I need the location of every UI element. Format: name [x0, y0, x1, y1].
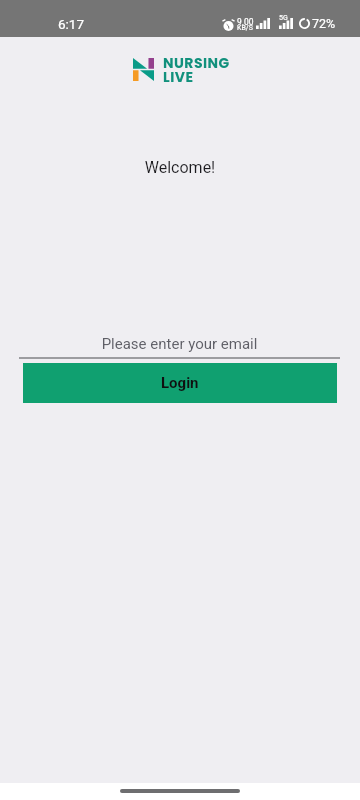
staticText: NURSING [163, 53, 230, 73]
staticText: Welcome! [0, 158, 360, 177]
staticText: Please enter your email [19, 335, 340, 353]
button[interactable]: Home [120, 789, 240, 793]
staticText: LIVE [163, 67, 194, 87]
button[interactable]: Login [23, 363, 337, 403]
staticText: Login [161, 374, 199, 392]
staticText: 9.00 [237, 17, 254, 27]
staticText: KB/S [237, 24, 253, 32]
staticText: 5G [279, 14, 288, 22]
staticText: 72% [312, 16, 336, 31]
staticText: 6:17 [58, 16, 85, 32]
other: Nursing Live logo [133, 58, 154, 81]
button[interactable]: Please enter your email [19, 328, 340, 359]
